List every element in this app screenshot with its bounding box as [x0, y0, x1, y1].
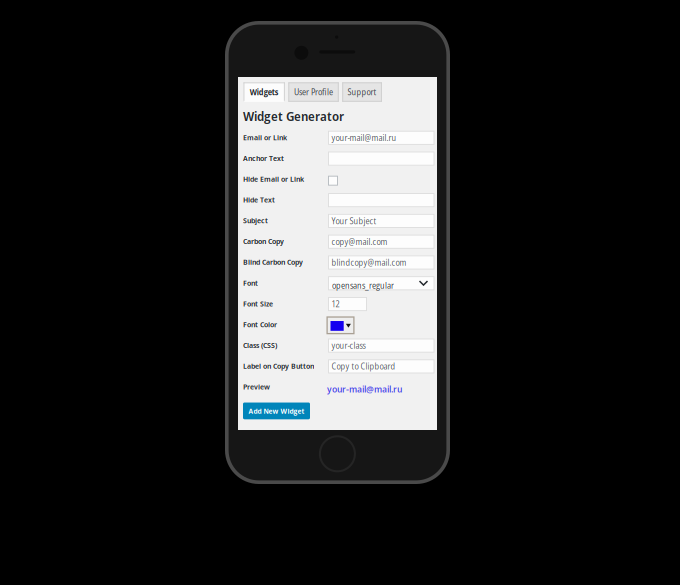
button[interactable]: Blind Carbon Copy: [328, 256, 434, 269]
button[interactable]: Anchor Text: [328, 152, 434, 165]
staticText: Your Subject: [331, 215, 376, 227]
button[interactable]: Font: [328, 277, 434, 290]
staticText: User Profile: [294, 86, 333, 98]
staticText: Hide Email or Link: [243, 173, 304, 184]
button[interactable]: User Profile: [288, 82, 339, 102]
button[interactable]: Add New Widget: [243, 402, 310, 419]
button[interactable]: Support: [342, 82, 382, 102]
button[interactable]: Carbon Copy: [328, 235, 434, 248]
button[interactable]: Font Size: [328, 297, 366, 311]
staticText: Widgets: [250, 86, 279, 98]
staticText: Carbon Copy: [243, 236, 284, 246]
staticText: Subject: [243, 215, 268, 225]
staticText: Preview: [243, 381, 270, 392]
staticText: Label on Copy Button: [243, 360, 314, 371]
staticText: Font Size: [243, 298, 273, 309]
staticText: Widget Generator: [243, 107, 344, 125]
staticText: Hide Text: [243, 194, 275, 205]
button[interactable]: Class (CSS): [328, 339, 434, 352]
staticText: your-mail@mail.ru: [331, 132, 396, 143]
staticText: Email or Link: [243, 132, 287, 142]
staticText: Font Color: [243, 319, 277, 329]
button[interactable]: Widgets: [243, 82, 285, 102]
staticText: 12: [331, 298, 339, 310]
staticText: Class (CSS): [243, 340, 277, 350]
button[interactable]: Subject: [328, 214, 434, 227]
button[interactable]: Home: [320, 436, 355, 471]
button[interactable]: Font colour: [327, 317, 354, 334]
staticText: your-mail@mail.ru: [327, 382, 402, 395]
button[interactable]: Hide Text: [328, 193, 434, 207]
staticText: Add New Widget: [248, 406, 304, 416]
staticText: Font: [243, 277, 258, 288]
staticText: your-class: [331, 340, 365, 351]
staticText: Anchor Text: [243, 153, 284, 163]
staticText: opensans_regular: [332, 280, 394, 291]
button[interactable]: Email or Link: [328, 131, 434, 144]
staticText: Blind Carbon Copy: [243, 257, 303, 267]
button[interactable]: Label on Copy Button: [328, 360, 434, 373]
staticText: copy@mail.com: [331, 236, 387, 247]
staticText: Support: [348, 86, 377, 98]
staticText: blindcopy@mail.com: [331, 257, 406, 268]
button[interactable]: Hide Email or Link: [328, 176, 337, 185]
staticText: Copy to Clipboard: [331, 361, 395, 372]
